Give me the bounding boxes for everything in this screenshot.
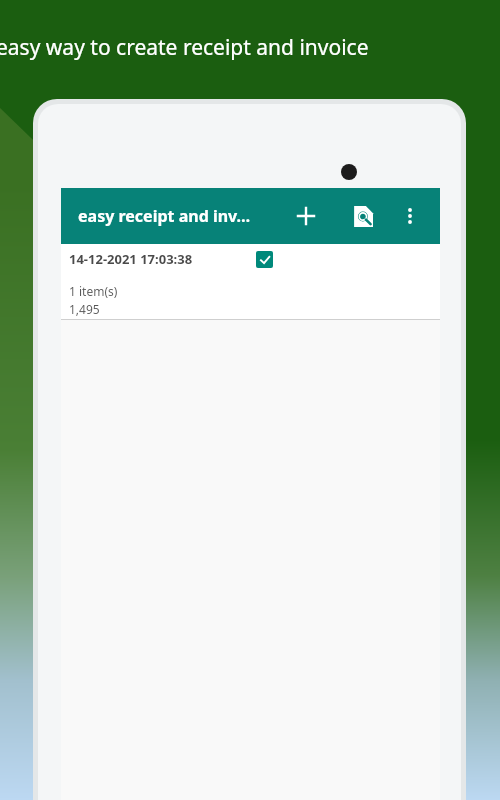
staticText: 14-12-2021 17:03:38 <box>69 250 193 268</box>
staticText: easy receipt and inv… <box>78 205 251 227</box>
staticText: 1 item(s) <box>69 283 118 299</box>
button[interactable]: Selected <box>256 251 273 268</box>
button[interactable]: Add <box>286 196 326 236</box>
button[interactable]: More options <box>392 198 428 234</box>
button[interactable]: 14-12-2021 17:03:38 <box>61 244 440 319</box>
staticText: easy way to create receipt and invoice <box>0 33 369 62</box>
button[interactable]: Find in page <box>342 196 382 236</box>
staticText: 1,495 <box>69 301 100 317</box>
